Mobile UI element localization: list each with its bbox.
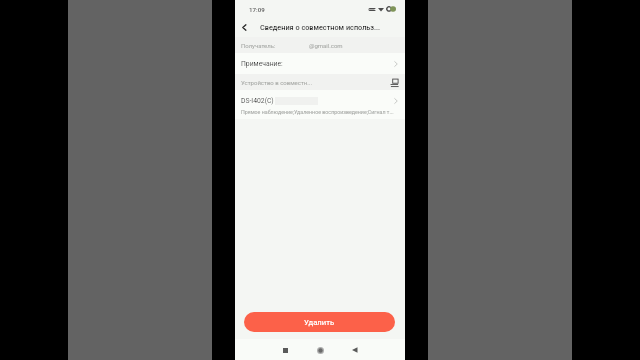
- button[interactable]: DS-I402(C): [235, 90, 405, 119]
- button[interactable]: Устройство в совместн...: [235, 74, 405, 90]
- other: Shared device: [390, 78, 399, 87]
- button[interactable]: Удалить: [244, 312, 395, 332]
- button[interactable]: Back: [235, 18, 254, 37]
- staticText: 17:09: [249, 6, 265, 13]
- button[interactable]: Recent apps: [276, 341, 294, 359]
- staticText: Примечание:: [241, 60, 283, 68]
- button[interactable]: Back: [346, 341, 364, 359]
- staticText: Сведения о совместном использ...: [260, 23, 381, 32]
- staticText: Удалить: [304, 318, 335, 327]
- button[interactable]: Примечание:: [235, 53, 405, 74]
- staticText: Получатель:: [241, 42, 276, 49]
- staticText: DS-I402(C): [241, 97, 274, 105]
- button[interactable]: Home: [311, 341, 329, 359]
- staticText: Устройство в совместн...: [241, 79, 313, 86]
- staticText: @gmail.com: [309, 42, 343, 49]
- staticText: Прямое наблюдение;Удаленное воспроизведе…: [241, 109, 394, 115]
